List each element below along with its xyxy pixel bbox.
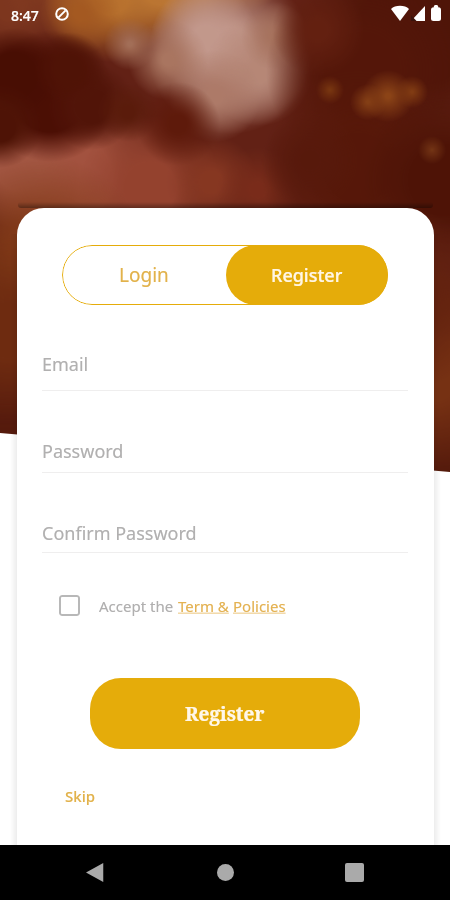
staticText: Login bbox=[119, 262, 169, 288]
button[interactable]: Back bbox=[86, 863, 104, 882]
staticText: Register bbox=[271, 263, 343, 288]
staticText: Register bbox=[185, 701, 265, 727]
button[interactable]: Home bbox=[217, 864, 234, 881]
staticText: Term & bbox=[178, 596, 233, 616]
staticText: Password bbox=[42, 439, 124, 464]
staticText: Confirm Password bbox=[42, 521, 197, 546]
staticText: Email bbox=[42, 352, 89, 377]
staticText: 8:47 bbox=[11, 6, 39, 25]
staticText: Policies bbox=[233, 596, 286, 616]
button[interactable]: Recent apps bbox=[345, 863, 364, 882]
staticText: Skip bbox=[65, 786, 95, 806]
button[interactable]: Register bbox=[226, 245, 388, 305]
button[interactable]: Register bbox=[90, 678, 360, 749]
staticText: Accept the bbox=[99, 596, 178, 616]
button[interactable]: Skip bbox=[65, 786, 95, 806]
button[interactable]: Login bbox=[62, 245, 226, 305]
button[interactable]: Accept the bbox=[59, 595, 286, 616]
